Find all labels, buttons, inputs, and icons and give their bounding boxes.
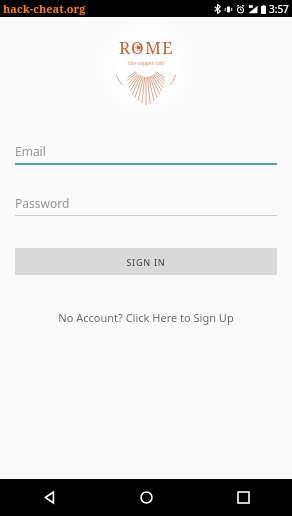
staticText: 3:57 (269, 2, 289, 16)
staticText: E (162, 36, 174, 59)
button[interactable]: Home (98, 479, 195, 516)
staticText: Password (15, 195, 70, 211)
staticText: R (119, 36, 131, 59)
staticText: hack-cheat.org (3, 1, 86, 16)
button[interactable]: Email (15, 141, 277, 165)
button[interactable]: Password (15, 193, 277, 216)
button[interactable]: Back (0, 479, 98, 516)
button[interactable]: No Account? Click Here to Sign Up (0, 304, 292, 331)
button[interactable]: SIGN IN (15, 248, 277, 275)
staticText: Email (15, 143, 46, 159)
staticText: SIGN IN (126, 256, 166, 268)
staticText: the copper city (128, 60, 165, 66)
button[interactable]: Recent apps (195, 479, 292, 516)
staticText: No Account? Click Here to Sign Up (58, 310, 234, 325)
staticText: M (145, 36, 162, 59)
staticText: O (131, 36, 145, 59)
